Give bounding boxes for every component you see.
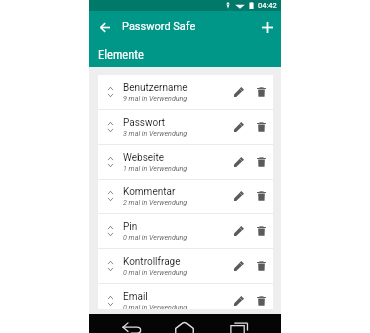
- staticText: Kommentar: [123, 186, 176, 198]
- button[interactable]: Edit: [227, 146, 250, 178]
- button[interactable]: Edit: [227, 76, 250, 108]
- button[interactable]: Delete: [250, 250, 273, 282]
- button[interactable]: Edit: [227, 250, 250, 282]
- button[interactable]: Delete: [250, 180, 273, 212]
- button[interactable]: Delete: [250, 111, 273, 143]
- staticText: 2 mal in Verwendung: [123, 198, 188, 206]
- button[interactable]: Back: [122, 314, 142, 333]
- staticText: Pin: [123, 221, 138, 233]
- button[interactable]: Kommentar: [98, 179, 273, 213]
- staticText: 04:42: [258, 1, 277, 10]
- staticText: 3 mal in Verwendung: [123, 129, 188, 137]
- staticText: 9 mal in Verwendung: [123, 94, 188, 102]
- staticText: Passwort: [123, 117, 166, 129]
- staticText: 0 mal in Verwendung: [123, 268, 188, 276]
- staticText: Benutzername: [123, 82, 188, 94]
- staticText: 0 mal in Verwendung: [123, 233, 188, 241]
- staticText: Password Safe: [122, 20, 196, 33]
- button[interactable]: Delete: [250, 146, 273, 178]
- button[interactable]: Delete: [250, 76, 273, 108]
- button[interactable]: Benutzername: [98, 75, 273, 109]
- button[interactable]: Back: [94, 12, 115, 42]
- staticText: Email: [123, 291, 148, 303]
- button[interactable]: Recents: [230, 314, 248, 333]
- button[interactable]: Pin: [98, 214, 273, 248]
- button[interactable]: Kontrollfrage: [98, 249, 273, 283]
- button[interactable]: Edit: [227, 215, 250, 247]
- staticText: 0 mal in Verwendung: [123, 303, 188, 309]
- button[interactable]: Edit: [227, 111, 250, 143]
- button[interactable]: Home: [175, 314, 194, 333]
- staticText: Webseite: [123, 152, 165, 164]
- button[interactable]: Passwort: [98, 110, 273, 144]
- staticText: Kontrollfrage: [123, 256, 181, 268]
- button[interactable]: Edit: [227, 285, 250, 309]
- staticText: 1 mal in Verwendung: [123, 164, 188, 172]
- button[interactable]: Webseite: [98, 145, 273, 179]
- button[interactable]: Delete: [250, 285, 273, 309]
- button[interactable]: Email: [98, 284, 273, 309]
- button[interactable]: Add: [257, 12, 278, 42]
- button[interactable]: Edit: [227, 180, 250, 212]
- button[interactable]: Delete: [250, 215, 273, 247]
- staticText: Elemente: [98, 47, 144, 62]
